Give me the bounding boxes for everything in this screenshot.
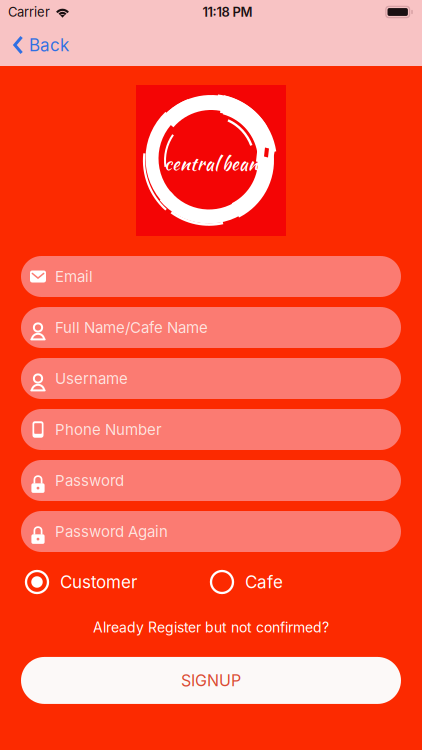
button[interactable]: SIGNUP bbox=[21, 657, 401, 704]
staticText: Password bbox=[55, 471, 124, 489]
button[interactable]: Password Again bbox=[21, 511, 401, 552]
staticText: Full Name/Cafe Name bbox=[55, 318, 208, 336]
button[interactable]: Already Register but not confirmed? bbox=[83, 615, 339, 640]
button[interactable]: Password bbox=[21, 460, 401, 501]
button[interactable]: Customer bbox=[25, 570, 137, 594]
staticText: central bean bbox=[164, 150, 258, 177]
button[interactable]: Email bbox=[21, 256, 401, 297]
staticText: Cafe bbox=[245, 572, 283, 592]
staticText: Password Again bbox=[55, 522, 168, 540]
staticText: Back bbox=[29, 35, 69, 55]
button[interactable]: Back bbox=[0, 25, 81, 65]
button[interactable]: Phone Number bbox=[21, 409, 401, 450]
staticText: Customer bbox=[60, 572, 137, 592]
staticText: Carrier bbox=[8, 4, 50, 20]
button[interactable]: Full Name/Cafe Name bbox=[21, 307, 401, 348]
staticText: 11:18 PM bbox=[202, 4, 252, 20]
staticText: Phone Number bbox=[55, 420, 162, 438]
staticText: Username bbox=[55, 369, 128, 387]
staticText: Email bbox=[55, 267, 93, 285]
button[interactable]: Username bbox=[21, 358, 401, 399]
staticText: SIGNUP bbox=[181, 671, 241, 690]
staticText: Already Register but not confirmed? bbox=[93, 619, 329, 636]
button[interactable]: Cafe bbox=[210, 570, 283, 594]
